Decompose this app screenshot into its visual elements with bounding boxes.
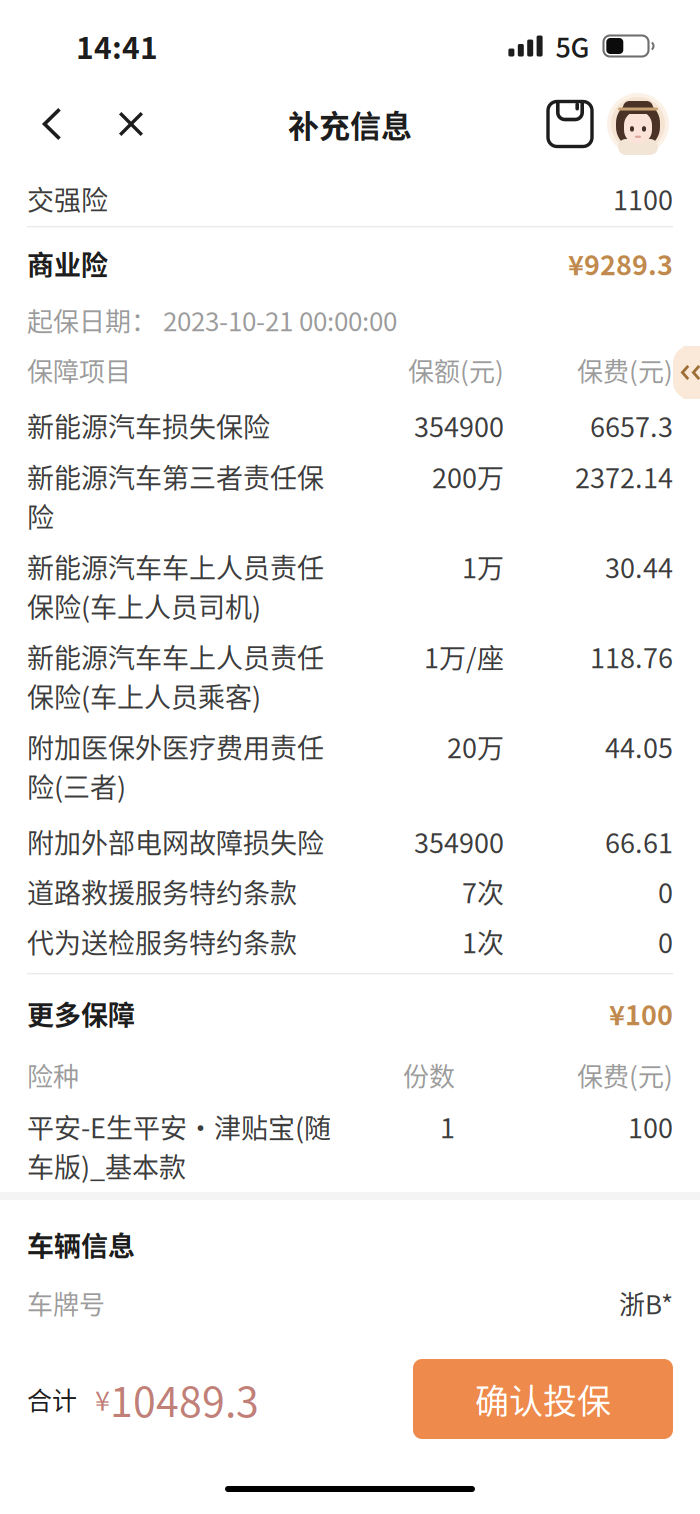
staticText: 交强险: [27, 179, 108, 218]
staticText: 5G: [555, 26, 589, 66]
staticText: 合计: [27, 1381, 77, 1417]
staticText: 保额(元): [408, 351, 504, 389]
staticText: 保险(车上人员乘客): [27, 676, 261, 715]
staticText: 118.76: [590, 637, 673, 676]
staticText: 确认投保: [475, 1374, 611, 1424]
staticText: 道路救援服务特约条款: [27, 872, 297, 911]
button[interactable]: Back: [26, 92, 78, 156]
staticText: 险(三者): [27, 766, 126, 805]
staticText: 14:41: [76, 24, 158, 68]
staticText: 新能源汽车车上人员责任: [27, 637, 324, 676]
staticText: 354900: [414, 406, 504, 445]
staticText: 1次: [462, 922, 504, 961]
staticText: 起保日期： 2023-10-21 00:00:00: [27, 301, 397, 339]
staticText: 6657.3: [590, 406, 673, 445]
staticText: 200万: [432, 457, 504, 496]
staticText: 保障项目: [27, 351, 131, 389]
staticText: 2372.14: [575, 457, 673, 496]
staticText: 险种: [27, 1056, 79, 1094]
staticText: 20万: [447, 727, 504, 766]
staticText: 7次: [462, 872, 504, 911]
staticText: 1万/座: [424, 637, 504, 676]
staticText: 浙B*: [619, 1284, 673, 1322]
staticText: 更多保障: [27, 994, 135, 1033]
button[interactable]: Profile: [607, 93, 669, 155]
staticText: 1100: [613, 179, 673, 218]
staticText: 补充信息: [288, 102, 412, 146]
staticText: ¥: [77, 1379, 110, 1419]
staticText: 平安-E生平安·津贴宝(随: [27, 1107, 331, 1146]
staticText: 0: [658, 872, 673, 911]
staticText: 新能源汽车损失保险: [27, 406, 270, 445]
staticText: 新能源汽车第三者责任保: [27, 457, 324, 496]
staticText: 0: [658, 922, 673, 961]
staticText: 附加外部电网故障损失险: [27, 822, 324, 861]
staticText: 354900: [414, 822, 504, 861]
staticText: ¥100: [609, 994, 673, 1033]
staticText: 10489.3: [110, 1369, 259, 1429]
staticText: 附加医保外医疗费用责任: [27, 727, 324, 766]
staticText: 1万: [462, 547, 504, 586]
button[interactable]: 确认投保: [413, 1359, 673, 1439]
staticText: 66.61: [605, 822, 673, 861]
button[interactable]: Collapse panel: [673, 346, 700, 399]
staticText: 新能源汽车车上人员责任: [27, 547, 324, 586]
staticText: 保险(车上人员司机): [27, 586, 261, 625]
staticText: 44.05: [605, 727, 673, 766]
staticText: 车版)_基本款: [27, 1146, 186, 1185]
button[interactable]: Close: [105, 92, 157, 156]
staticText: 1: [440, 1107, 455, 1146]
button[interactable]: Save: [545, 92, 595, 156]
staticText: 份数: [403, 1056, 455, 1094]
staticText: 车辆信息: [27, 1225, 135, 1264]
staticText: 保费(元): [577, 1056, 673, 1094]
staticText: ¥9289.3: [568, 244, 673, 283]
staticText: 保费(元): [577, 351, 673, 389]
staticText: 100: [628, 1107, 673, 1146]
staticText: 30.44: [605, 547, 673, 586]
staticText: 商业险: [27, 244, 108, 283]
staticText: 险: [27, 496, 54, 535]
staticText: 车牌号: [27, 1284, 105, 1322]
staticText: 代为送检服务特约条款: [27, 922, 297, 961]
